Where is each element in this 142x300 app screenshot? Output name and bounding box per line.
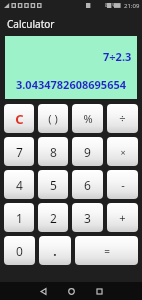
staticText: 8 (50, 144, 57, 160)
button[interactable]: - (107, 170, 138, 199)
button[interactable]: Back (29, 282, 57, 300)
button[interactable]: × (107, 137, 138, 166)
staticText: 89 % (105, 2, 117, 9)
staticText: 9 (84, 144, 91, 160)
button[interactable]: 7÷2.3 (5, 36, 137, 99)
staticText: 7÷2.3 (103, 49, 132, 64)
staticText: + (119, 210, 126, 225)
staticText: 5 (50, 177, 57, 193)
button[interactable]: 7 (4, 137, 34, 166)
button[interactable]: 3 (72, 203, 103, 232)
staticText: × (120, 146, 126, 158)
staticText: - (121, 177, 125, 192)
button[interactable]: 1 (4, 203, 34, 232)
button[interactable]: 4 (4, 170, 34, 199)
button[interactable]: 6 (72, 170, 103, 199)
staticText: 6 (84, 177, 91, 193)
button[interactable]: 0 (4, 236, 35, 265)
staticText: 7 (16, 144, 23, 160)
button[interactable]: ÷ (107, 104, 138, 133)
button[interactable]: % (72, 104, 103, 133)
staticText: C (15, 110, 24, 128)
staticText: 21:09 (124, 2, 140, 10)
staticText: ( ) (48, 111, 58, 126)
staticText: % (83, 111, 93, 126)
button[interactable]: + (107, 203, 138, 232)
button[interactable]: ( ) (38, 104, 68, 133)
staticText: = (104, 244, 110, 258)
staticText: 0 (16, 243, 23, 259)
staticText: 1 (16, 210, 23, 226)
button[interactable]: 8 (38, 137, 68, 166)
staticText: ÷ (119, 111, 126, 126)
staticText: 3.0434782608695654 (5, 77, 137, 92)
button[interactable]: . (39, 236, 71, 265)
staticText: 2 (50, 210, 57, 226)
button[interactable]: 5 (38, 170, 68, 199)
button[interactable]: = (75, 236, 138, 265)
button[interactable]: 9 (72, 137, 103, 166)
staticText: 4 (16, 177, 23, 193)
button[interactable]: Home (57, 282, 85, 300)
staticText: . (53, 243, 57, 259)
button[interactable]: Recents (85, 282, 113, 300)
button[interactable]: 2 (38, 203, 68, 232)
staticText: Calculator (7, 17, 55, 31)
staticText: 3 (84, 210, 91, 226)
button[interactable]: C (4, 104, 34, 133)
